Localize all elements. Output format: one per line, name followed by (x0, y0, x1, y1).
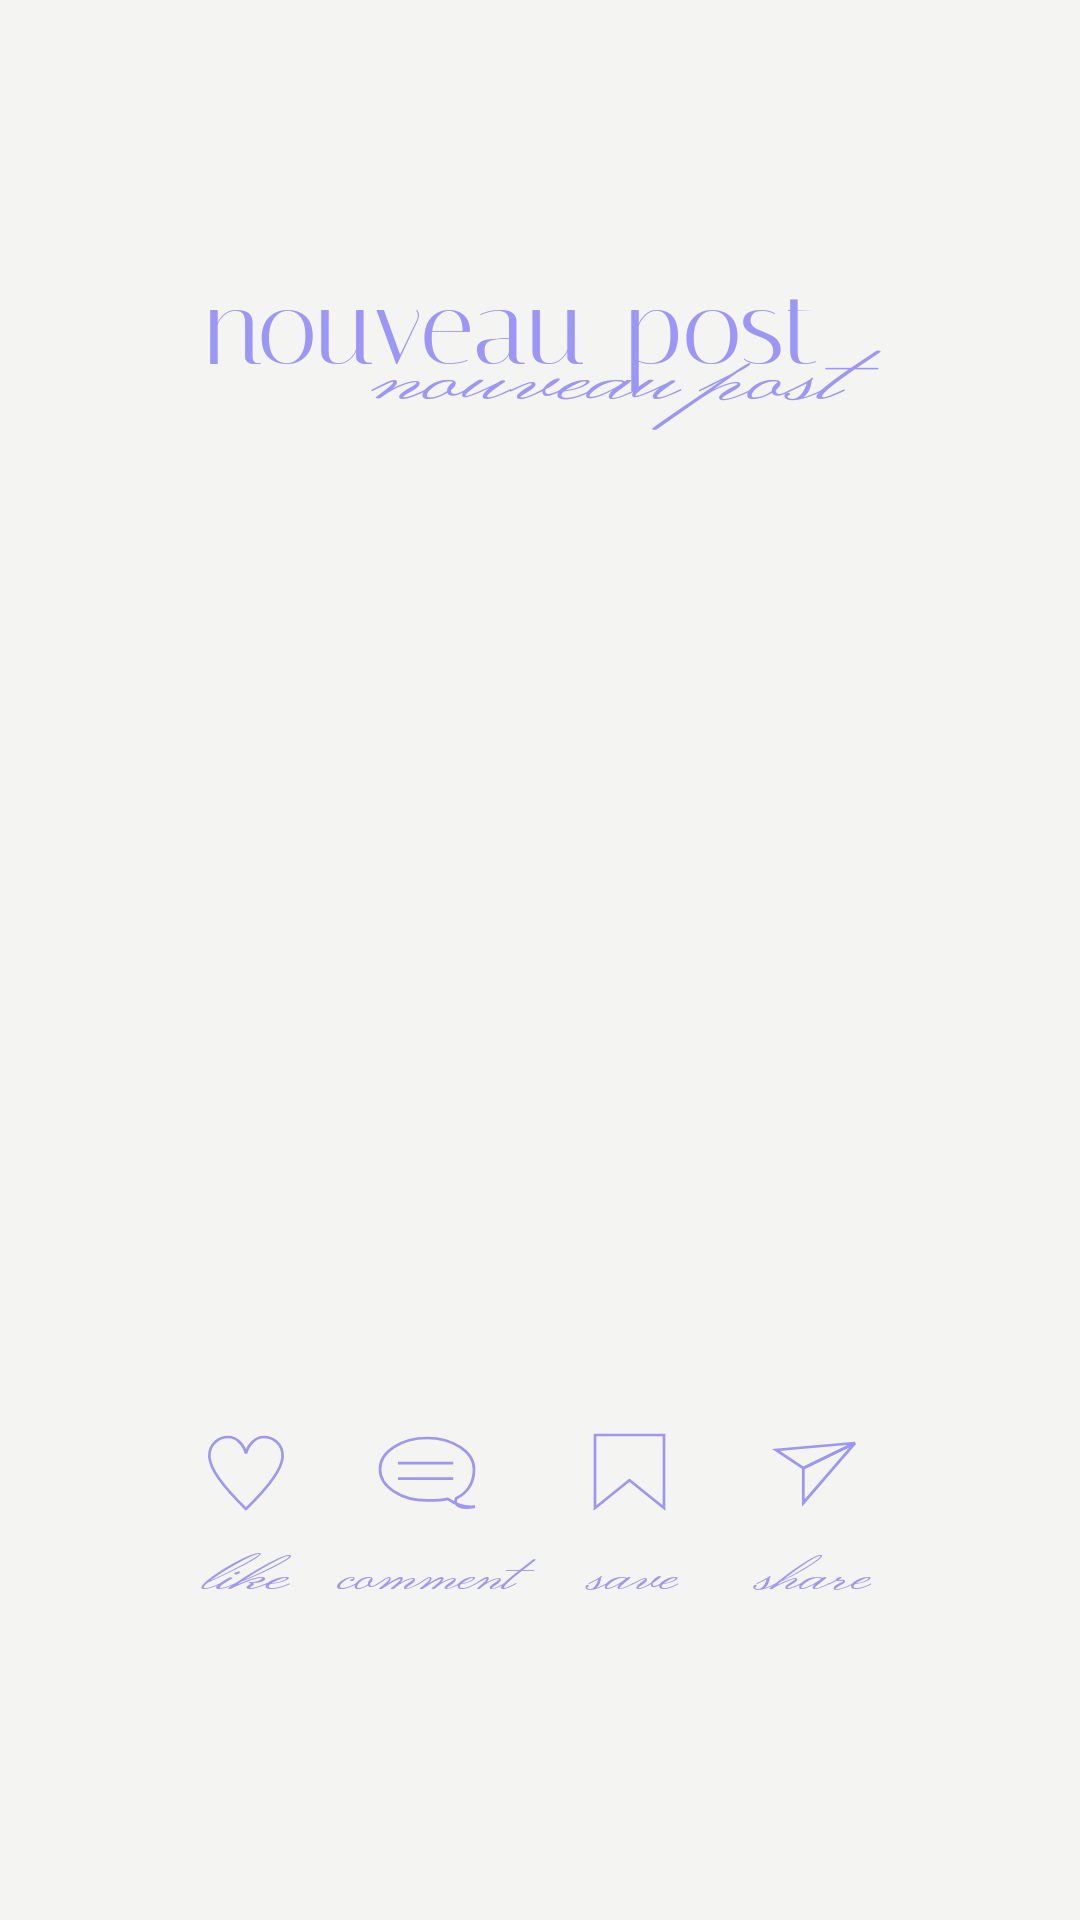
other: Share (776, 1443, 855, 1503)
staticText: nouveau post (374, 301, 847, 445)
staticText: save (590, 1527, 679, 1618)
button[interactable] (543, 1405, 713, 1590)
other: Save (595, 1435, 664, 1508)
staticText: comment (340, 1527, 517, 1618)
staticText: post (626, 266, 820, 391)
staticText: share (758, 1527, 873, 1618)
other: Like (209, 1437, 283, 1509)
staticText: like (206, 1527, 291, 1618)
staticText: nouveau (206, 266, 584, 391)
button[interactable] (345, 1408, 515, 1593)
other: Comment (380, 1438, 474, 1503)
button[interactable] (730, 1413, 900, 1598)
button[interactable] (161, 1407, 331, 1592)
